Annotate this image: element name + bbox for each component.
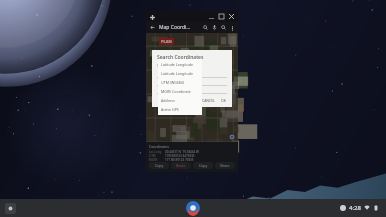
- staticText: Active GPS: [161, 107, 179, 112]
- button[interactable]: App menu: [149, 14, 155, 20]
- staticText: Address: [161, 98, 175, 103]
- staticText: Copy: [155, 163, 164, 168]
- button[interactable]: App: [186, 201, 200, 215]
- button[interactable]: Back: [148, 23, 157, 32]
- button[interactable]: Active GPS: [158, 105, 202, 114]
- staticText: Latitude Longitude: [161, 62, 193, 67]
- button[interactable]: PLAN: [159, 38, 174, 45]
- staticText: 17T NE 89123 76935: [165, 158, 194, 162]
- button[interactable]: Minimize: [207, 12, 216, 21]
- button[interactable]: More options: [228, 24, 236, 32]
- staticText: Reset: [176, 163, 186, 168]
- button[interactable]: Address: [158, 96, 202, 105]
- staticText: Select Coordinate Type: [157, 64, 190, 68]
- staticText: 40.44611 N 79.94444 W: [165, 150, 199, 154]
- staticText: 4:28: [349, 204, 361, 212]
- button[interactable]: Close: [227, 12, 236, 21]
- staticText: UTM: [149, 154, 156, 158]
- button[interactable]: UTM (WGS84): [158, 78, 202, 87]
- button[interactable]: Reset: [171, 162, 191, 169]
- staticText: Copy: [199, 163, 208, 168]
- staticText: MGRS Coordinate: [161, 89, 191, 94]
- staticText: 17N 589123 4476935: [165, 154, 195, 158]
- staticText: Share: [220, 163, 230, 168]
- staticText: Coordinates: [149, 144, 169, 149]
- button[interactable]: CANCEL: [201, 97, 216, 104]
- button[interactable]: Copy: [149, 162, 169, 169]
- staticText: Latitude Longitude DMS: [161, 71, 199, 76]
- staticText: MGRS: [149, 158, 158, 162]
- button[interactable]: Share: [215, 162, 235, 169]
- button[interactable]: Latitude Longitude: [158, 60, 202, 69]
- button[interactable]: Search: [201, 23, 210, 32]
- staticText: Search Coordinates: [157, 54, 204, 61]
- button[interactable]: Search coordinates: [219, 23, 228, 32]
- button[interactable]: Maximize: [217, 12, 226, 21]
- button[interactable]: OK: [220, 97, 227, 104]
- staticText: OK: [221, 98, 226, 103]
- staticText: UTM (WGS84): [161, 80, 184, 85]
- staticText: PLAN: [161, 39, 172, 44]
- staticText: Map Coordi…: [159, 24, 191, 31]
- button[interactable]: Latitude Longitude DMS: [158, 69, 202, 78]
- button[interactable]: Voice search: [210, 23, 219, 32]
- button[interactable]: Copy: [193, 162, 213, 169]
- button[interactable]: Launcher: [5, 203, 16, 214]
- button[interactable]: MGRS Coordinate: [158, 87, 202, 96]
- button[interactable]: Status tray: [337, 202, 382, 214]
- staticText: CANCEL: [202, 98, 215, 103]
- staticText: Lat-Long: [149, 150, 162, 154]
